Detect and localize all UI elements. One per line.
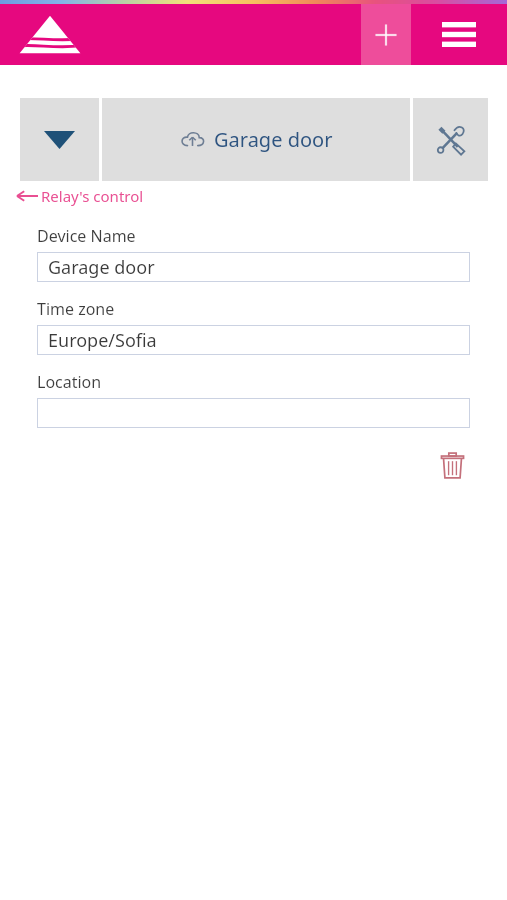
button[interactable]: Delete device (433, 446, 471, 484)
button[interactable]: Home (0, 4, 361, 65)
button[interactable] (37, 398, 470, 428)
button[interactable]: Relay's control (15, 186, 144, 206)
staticText: Garage door (48, 255, 155, 280)
staticText: Time zone (37, 298, 115, 320)
staticText: Location (37, 371, 102, 393)
button[interactable]: Add device (361, 4, 411, 65)
staticText: Device Name (37, 225, 136, 247)
button[interactable]: Garage door (37, 252, 470, 282)
button[interactable]: Choose device (20, 98, 99, 181)
button[interactable]: Menu (411, 4, 507, 65)
button[interactable]: Europe/Sofia (37, 325, 470, 355)
staticText: Garage door (214, 126, 333, 153)
staticText: Europe/Sofia (48, 328, 157, 353)
staticText: Relay's control (41, 186, 144, 206)
button[interactable]: Garage door (102, 98, 410, 181)
button[interactable]: Device settings (413, 98, 488, 181)
